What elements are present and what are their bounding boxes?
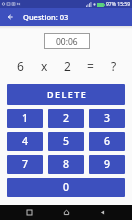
button[interactable]: Back [96,206,109,219]
staticText: 5 [63,134,70,148]
staticText: 6 [104,134,111,148]
staticText: 2 [63,111,70,125]
staticText: 00:06 [56,36,78,48]
staticText: ? [111,58,117,73]
button[interactable]: Back [4,11,16,23]
staticText: 7 [22,157,29,171]
button[interactable]: 2 [48,109,84,128]
staticText: = [87,58,94,73]
button[interactable]: Home [60,206,73,219]
staticText: 97% 15:59 [106,1,131,8]
button[interactable]: 7 [7,155,43,174]
button[interactable]: 4 [7,132,43,151]
button[interactable]: 1 [7,109,43,128]
staticText: x [41,58,48,73]
button[interactable]: 6 [89,132,125,151]
staticText: DELETE [47,88,88,100]
staticText: 0 [63,180,70,194]
staticText: 1 [22,111,29,125]
staticText: 8 [63,157,70,171]
staticText: 6 [17,58,24,73]
button[interactable]: Recents [23,206,36,219]
staticText: 2 [64,58,71,73]
button[interactable]: 3 [89,109,125,128]
button[interactable]: 9 [89,155,125,174]
button[interactable]: DELETE [7,84,125,105]
staticText: Question: 03 [23,12,69,22]
staticText: 4 [22,134,29,148]
button[interactable]: 0 [7,178,125,197]
staticText: 9 [104,157,111,171]
button[interactable]: 8 [48,155,84,174]
staticText: 3 [104,111,111,125]
button[interactable]: 5 [48,132,84,151]
